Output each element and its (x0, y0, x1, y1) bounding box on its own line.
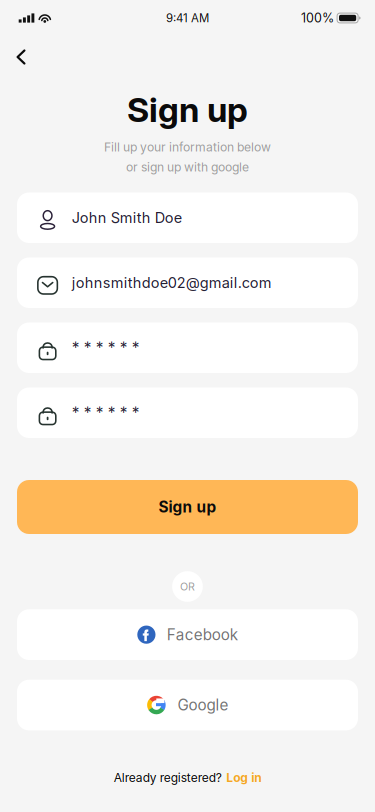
staticText: John Smith Doe (72, 209, 182, 227)
staticText: Sign up (158, 498, 216, 516)
button[interactable]: Already registered? (114, 770, 261, 785)
button[interactable]: Google (17, 680, 358, 730)
staticText: Google (178, 696, 229, 714)
staticText: OR (180, 580, 195, 593)
button[interactable]: * * * * * * (17, 387, 358, 438)
button[interactable]: John Smith Doe (17, 192, 358, 243)
staticText: johnsmithdoe02@gmail.com (72, 274, 272, 292)
staticText: Fill up your information below (104, 140, 271, 154)
staticText: Sign up (127, 89, 248, 130)
staticText: * * * * * * (72, 338, 140, 357)
staticText: Log in (226, 770, 261, 785)
button[interactable]: Facebook (17, 609, 358, 660)
staticText: Already registered? (114, 770, 222, 785)
button[interactable]: Back (4, 40, 38, 74)
button[interactable]: johnsmithdoe02@gmail.com (17, 257, 358, 308)
button[interactable]: Sign up (17, 480, 358, 534)
staticText: * * * * * * (72, 403, 140, 422)
staticText: 9:41 AM (166, 11, 209, 25)
staticText: 100% (301, 10, 334, 26)
staticText: or sign up with google (126, 160, 249, 174)
staticText: Facebook (167, 625, 238, 644)
button[interactable]: * * * * * * (17, 322, 358, 373)
